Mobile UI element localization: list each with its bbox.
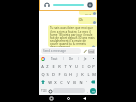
- button[interactable]: More: [92, 57, 95, 60]
- staticText: ': [86, 80, 87, 85]
- staticText: I: [82, 64, 84, 69]
- button[interactable]: Home: [65, 95, 72, 102]
- staticText: S: [46, 72, 49, 77]
- staticText: E: [52, 64, 55, 69]
- staticText: ?123: [41, 89, 47, 93]
- staticText: L: [87, 72, 90, 77]
- button[interactable]: L: [86, 70, 91, 78]
- button[interactable]: J: [74, 70, 79, 78]
- staticText: F: [58, 72, 61, 77]
- button[interactable]: N: [78, 78, 83, 86]
- staticText: Je: [84, 57, 87, 61]
- button[interactable]: Attach: [82, 48, 88, 54]
- button[interactable]: U: [74, 62, 79, 70]
- button[interactable]: F: [57, 70, 62, 78]
- button[interactable]: D: [51, 70, 56, 78]
- button[interactable]: Back: [81, 95, 88, 102]
- button[interactable]: Send: [88, 49, 95, 54]
- button[interactable]: Send: [90, 88, 96, 94]
- button[interactable]: V: [66, 78, 71, 86]
- button[interactable]: ?123: [40, 88, 48, 94]
- staticText: D: [52, 72, 55, 77]
- staticText: Z: [46, 64, 49, 69]
- staticText: U: [75, 64, 78, 69]
- button[interactable]: Shift: [40, 78, 46, 86]
- staticText: M: [92, 72, 96, 77]
- button[interactable]: H: [68, 70, 73, 78]
- button[interactable]: E: [51, 62, 56, 70]
- button[interactable]: Tu sais aussi bien que moi que il en a r…: [48, 25, 97, 47]
- staticText: Ok: [79, 18, 83, 22]
- staticText: Tout: [51, 57, 58, 61]
- button[interactable]: Backspace: [90, 78, 96, 86]
- staticText: W: [48, 80, 52, 85]
- staticText: Tu sais aussi bien que moi que il en a r…: [50, 26, 95, 47]
- button[interactable]: X: [53, 78, 58, 86]
- button[interactable]: T: [63, 62, 68, 70]
- staticText: X: [54, 80, 57, 85]
- staticText: .: [87, 89, 89, 94]
- button[interactable]: Z: [45, 62, 50, 70]
- staticText: Send: [88, 50, 95, 54]
- staticText: 20:15: [85, 12, 92, 15]
- button[interactable]: C: [59, 78, 64, 86]
- button[interactable]: Headphones: [43, 1, 51, 9]
- staticText: V: [67, 80, 70, 85]
- staticText: N: [79, 80, 83, 85]
- button[interactable]: P: [91, 62, 96, 70]
- staticText: J: [76, 72, 78, 77]
- staticText: H: [69, 72, 72, 77]
- staticText: O: [87, 64, 91, 69]
- staticText: A: [41, 64, 44, 69]
- button[interactable]: 20:15: [79, 11, 97, 15]
- button[interactable]: Settings: [86, 1, 94, 9]
- staticText: R: [58, 64, 61, 69]
- button[interactable]: W: [47, 78, 52, 86]
- staticText: De: [69, 57, 73, 61]
- button[interactable]: Google: [41, 57, 45, 61]
- button[interactable]: Send a message: [41, 48, 81, 54]
- button[interactable]: B: [72, 78, 77, 86]
- button[interactable]: G: [63, 70, 68, 78]
- button[interactable]: I: [80, 62, 85, 70]
- button[interactable]: O: [86, 62, 91, 70]
- staticText: B: [73, 80, 76, 85]
- staticText: Q: [41, 72, 45, 77]
- button[interactable]: .: [85, 88, 90, 94]
- button[interactable]: R: [57, 62, 62, 70]
- button[interactable]: M: [91, 70, 96, 78]
- staticText: Y: [69, 64, 72, 69]
- button[interactable]: ': [84, 78, 89, 86]
- button[interactable]: A: [40, 62, 45, 70]
- button[interactable]: K: [80, 70, 85, 78]
- button[interactable]: Emoji: [48, 88, 53, 94]
- button[interactable]: S: [45, 70, 50, 78]
- staticText: C: [60, 80, 63, 85]
- button[interactable]: Recents: [48, 95, 55, 102]
- staticText: P: [92, 64, 95, 69]
- button[interactable]: Y: [68, 62, 73, 70]
- button[interactable]: Q: [40, 70, 45, 78]
- button[interactable]: Ok: [78, 17, 97, 24]
- staticText: G: [64, 72, 67, 77]
- staticText: Send a message: [43, 49, 66, 53]
- staticText: T: [64, 64, 67, 69]
- staticText: K: [81, 72, 84, 77]
